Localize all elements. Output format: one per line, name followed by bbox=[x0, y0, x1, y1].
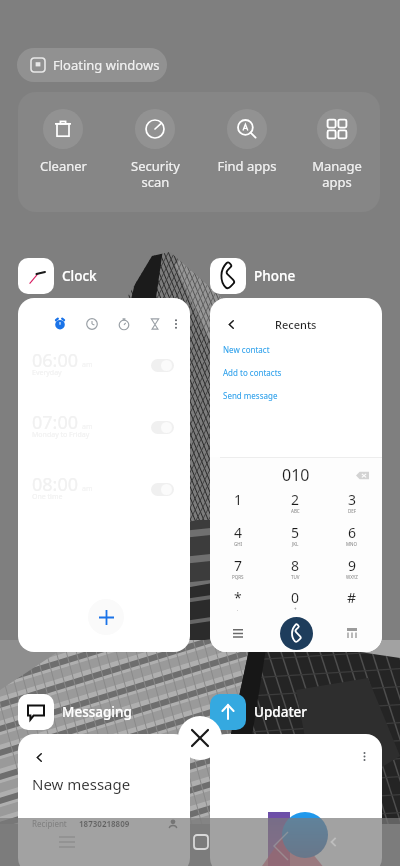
staticText: . bbox=[237, 606, 239, 612]
button[interactable]: Home bbox=[134, 818, 267, 866]
staticText: 5 bbox=[291, 523, 300, 542]
staticText: ABC bbox=[291, 508, 300, 514]
staticText: 0 bbox=[291, 588, 300, 607]
button[interactable]: Back bbox=[30, 748, 48, 766]
staticText: 18730218809 bbox=[79, 818, 130, 829]
button[interactable]: Backspace bbox=[354, 467, 370, 483]
staticText: 1 bbox=[234, 490, 243, 509]
staticText: 06:00 bbox=[32, 348, 79, 373]
button[interactable]: * bbox=[219, 588, 257, 619]
staticText: Monday to Friday bbox=[32, 430, 90, 440]
staticText: 2 bbox=[291, 490, 300, 509]
button[interactable]: Toggle alarm bbox=[151, 483, 174, 496]
button[interactable]: 3 bbox=[333, 490, 371, 521]
staticText: Phone bbox=[254, 267, 296, 285]
button[interactable]: Call log bbox=[229, 624, 247, 642]
button[interactable]: 0 bbox=[276, 588, 314, 619]
staticText: Floating windows bbox=[53, 56, 160, 74]
button[interactable]: Call bbox=[280, 617, 313, 650]
staticText: Messaging bbox=[62, 703, 132, 721]
button[interactable]: Add alarm bbox=[88, 599, 124, 635]
button[interactable]: New contact bbox=[223, 344, 270, 355]
staticText: TUV bbox=[291, 574, 300, 580]
staticText: 3 bbox=[348, 490, 357, 509]
staticText: Clock bbox=[62, 267, 97, 285]
staticText: # bbox=[347, 588, 357, 607]
staticText: am bbox=[82, 484, 93, 494]
staticText: One time bbox=[32, 492, 63, 502]
button[interactable]: 6 bbox=[333, 523, 371, 554]
staticText: Manage apps bbox=[312, 157, 362, 190]
button[interactable]: Toggle alarm bbox=[151, 359, 174, 372]
staticText: + bbox=[294, 606, 297, 612]
button[interactable]: Manage apps bbox=[293, 92, 380, 190]
staticText: 7 bbox=[234, 556, 243, 575]
staticText: 9 bbox=[348, 556, 357, 575]
button[interactable]: Security scan bbox=[111, 92, 199, 190]
staticText: GHI bbox=[234, 541, 243, 547]
button[interactable]: 8 bbox=[276, 556, 314, 587]
staticText: 010 bbox=[282, 464, 310, 486]
staticText: 4 bbox=[234, 523, 243, 542]
staticText: 6 bbox=[348, 523, 357, 542]
button[interactable]: Back bbox=[18, 734, 190, 866]
staticText: Find apps bbox=[217, 157, 277, 175]
staticText: Everyday bbox=[32, 368, 62, 378]
button[interactable]: 06:00 bbox=[18, 298, 190, 652]
button[interactable]: Back bbox=[267, 818, 400, 866]
staticText: New message bbox=[32, 774, 131, 794]
button[interactable]: Send message bbox=[223, 390, 278, 401]
staticText: MNO bbox=[346, 541, 358, 547]
button[interactable]: Back bbox=[222, 315, 240, 333]
button[interactable]: Cleaner bbox=[19, 92, 107, 175]
staticText: WXYZ bbox=[346, 574, 358, 580]
staticText: PQRS bbox=[232, 574, 244, 580]
button[interactable]: More options bbox=[355, 747, 373, 765]
staticText: DEF bbox=[348, 508, 357, 514]
button[interactable]: Close all bbox=[178, 716, 222, 760]
staticText: * bbox=[234, 588, 242, 607]
staticText: Security scan bbox=[131, 157, 180, 190]
button[interactable]: # bbox=[333, 588, 371, 619]
staticText: JKL bbox=[292, 541, 299, 547]
staticText: am bbox=[82, 422, 93, 432]
staticText: 08:00 bbox=[32, 472, 79, 497]
staticText: Recipient bbox=[32, 818, 67, 829]
button[interactable]: 1 bbox=[219, 490, 257, 521]
button[interactable]: 5 bbox=[276, 523, 314, 554]
button[interactable]: 7 bbox=[219, 556, 257, 587]
staticText: Updater bbox=[254, 703, 308, 721]
button[interactable]: Add to contacts bbox=[223, 367, 282, 378]
staticText: am bbox=[82, 360, 93, 370]
button[interactable]: Floating windows bbox=[17, 48, 167, 82]
button[interactable]: Keypad bbox=[343, 624, 361, 642]
button[interactable]: Find apps bbox=[203, 92, 291, 175]
button[interactable]: Recents bbox=[0, 818, 134, 866]
button[interactable]: More options bbox=[210, 734, 382, 866]
button[interactable]: Toggle alarm bbox=[151, 421, 174, 434]
staticText: 07:00 bbox=[32, 410, 79, 435]
staticText: Cleaner bbox=[40, 157, 87, 175]
staticText: Recents bbox=[275, 317, 317, 332]
button[interactable]: Back bbox=[210, 298, 382, 652]
button[interactable]: 9 bbox=[333, 556, 371, 587]
button[interactable]: 2 bbox=[276, 490, 314, 521]
button[interactable]: 4 bbox=[219, 523, 257, 554]
staticText: 8 bbox=[291, 556, 300, 575]
